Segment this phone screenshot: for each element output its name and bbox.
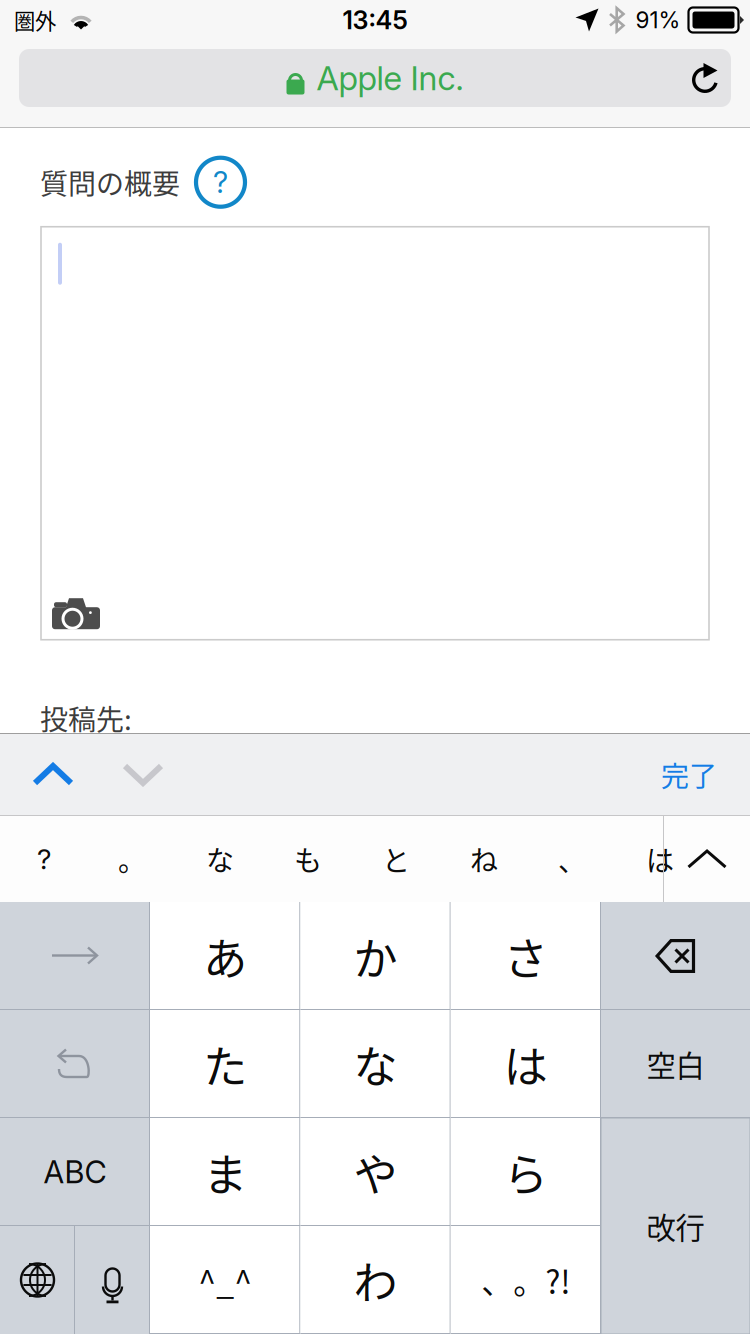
- staticText: 完了: [661, 754, 717, 795]
- staticText: な: [353, 1032, 397, 1096]
- button[interactable]: な: [176, 816, 264, 902]
- staticText: ?: [37, 842, 51, 876]
- staticText: 圏外: [14, 5, 56, 35]
- button[interactable]: わ: [300, 1226, 451, 1334]
- staticText: 質問の概要: [40, 162, 180, 202]
- staticText: 。: [118, 839, 146, 879]
- button[interactable]: か: [300, 902, 451, 1010]
- staticText: は: [646, 839, 674, 879]
- button[interactable]: [0, 902, 150, 1010]
- button[interactable]: Help: [180, 158, 245, 207]
- button[interactable]: [75, 1226, 150, 1334]
- button[interactable]: [0, 1226, 75, 1334]
- staticText: ね: [470, 839, 498, 879]
- button[interactable]: 、。?!: [451, 1226, 601, 1334]
- staticText: 13:45: [342, 5, 407, 35]
- staticText: 投稿先:: [40, 698, 132, 738]
- staticText: あ: [203, 924, 247, 988]
- button[interactable]: ま: [150, 1118, 300, 1226]
- button[interactable]: と: [352, 816, 440, 902]
- staticText: は: [504, 1032, 548, 1096]
- button[interactable]: ABC: [0, 1118, 150, 1226]
- staticText: 91%: [635, 6, 680, 34]
- staticText: わ: [353, 1248, 397, 1312]
- staticText: か: [353, 924, 397, 988]
- button[interactable]: な: [300, 1010, 451, 1118]
- button[interactable]: Next field: [106, 734, 180, 815]
- button[interactable]: ?: [0, 816, 88, 902]
- staticText: 、: [558, 839, 586, 879]
- button[interactable]: た: [150, 1010, 300, 1118]
- button[interactable]: [0, 1010, 150, 1118]
- button[interactable]: [601, 902, 750, 1010]
- button[interactable]: 。: [88, 816, 176, 902]
- staticText: 、。?!: [481, 1257, 570, 1303]
- staticText: 空白: [646, 1043, 704, 1085]
- button[interactable]: ら: [451, 1118, 601, 1226]
- staticText: さ: [504, 924, 548, 988]
- staticText: も: [294, 839, 322, 879]
- button[interactable]: ね: [440, 816, 528, 902]
- staticText: た: [203, 1032, 247, 1096]
- button[interactable]: ^_^: [150, 1226, 300, 1334]
- button[interactable]: も: [264, 816, 352, 902]
- staticText: Apple Inc.: [316, 58, 463, 98]
- button[interactable]: Apple Inc.: [19, 49, 731, 107]
- staticText: ABC: [43, 1153, 106, 1190]
- button[interactable]: Reload: [679, 49, 731, 107]
- staticText: ら: [504, 1140, 548, 1204]
- button[interactable]: は: [451, 1010, 601, 1118]
- button[interactable]: 、: [528, 816, 616, 902]
- button[interactable]: 改行: [601, 1118, 750, 1334]
- button[interactable]: More candidates: [664, 816, 750, 902]
- button[interactable]: 空白: [601, 1010, 750, 1118]
- button[interactable]: Previous field: [0, 734, 106, 815]
- button[interactable]: あ: [150, 902, 300, 1010]
- staticText: な: [206, 839, 234, 879]
- button[interactable]: 完了: [661, 734, 750, 815]
- staticText: や: [353, 1140, 397, 1204]
- staticText: 改行: [646, 1205, 704, 1247]
- staticText: ^_^: [198, 1257, 252, 1303]
- staticText: ?: [213, 164, 228, 200]
- staticText: と: [382, 839, 410, 879]
- button[interactable]: は: [616, 816, 704, 902]
- button[interactable]: や: [300, 1118, 451, 1226]
- staticText: ま: [203, 1140, 247, 1204]
- button[interactable]: さ: [451, 902, 601, 1010]
